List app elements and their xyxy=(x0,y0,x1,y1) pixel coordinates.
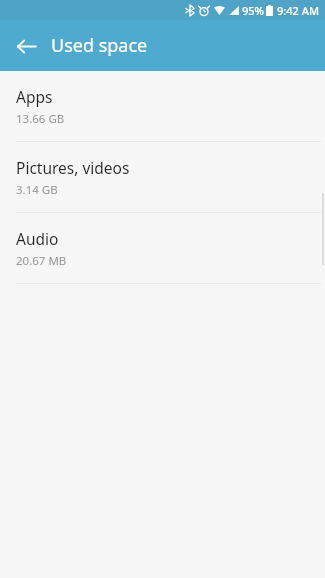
staticText: 3.14 GB xyxy=(16,182,58,198)
staticText: 95% xyxy=(242,3,264,18)
button[interactable]: Pictures, videos xyxy=(0,142,325,212)
staticText: 20.67 MB xyxy=(16,253,67,269)
button[interactable]: Back xyxy=(8,28,44,64)
staticText: Used space xyxy=(51,33,148,58)
staticText: Apps xyxy=(16,86,53,107)
staticText: 9:42 AM xyxy=(277,3,320,18)
button[interactable]: Apps xyxy=(0,71,325,141)
staticText: Audio xyxy=(16,228,59,249)
staticText: 13.66 GB xyxy=(16,111,65,127)
button[interactable]: Audio xyxy=(0,213,325,283)
staticText: Pictures, videos xyxy=(16,157,130,178)
